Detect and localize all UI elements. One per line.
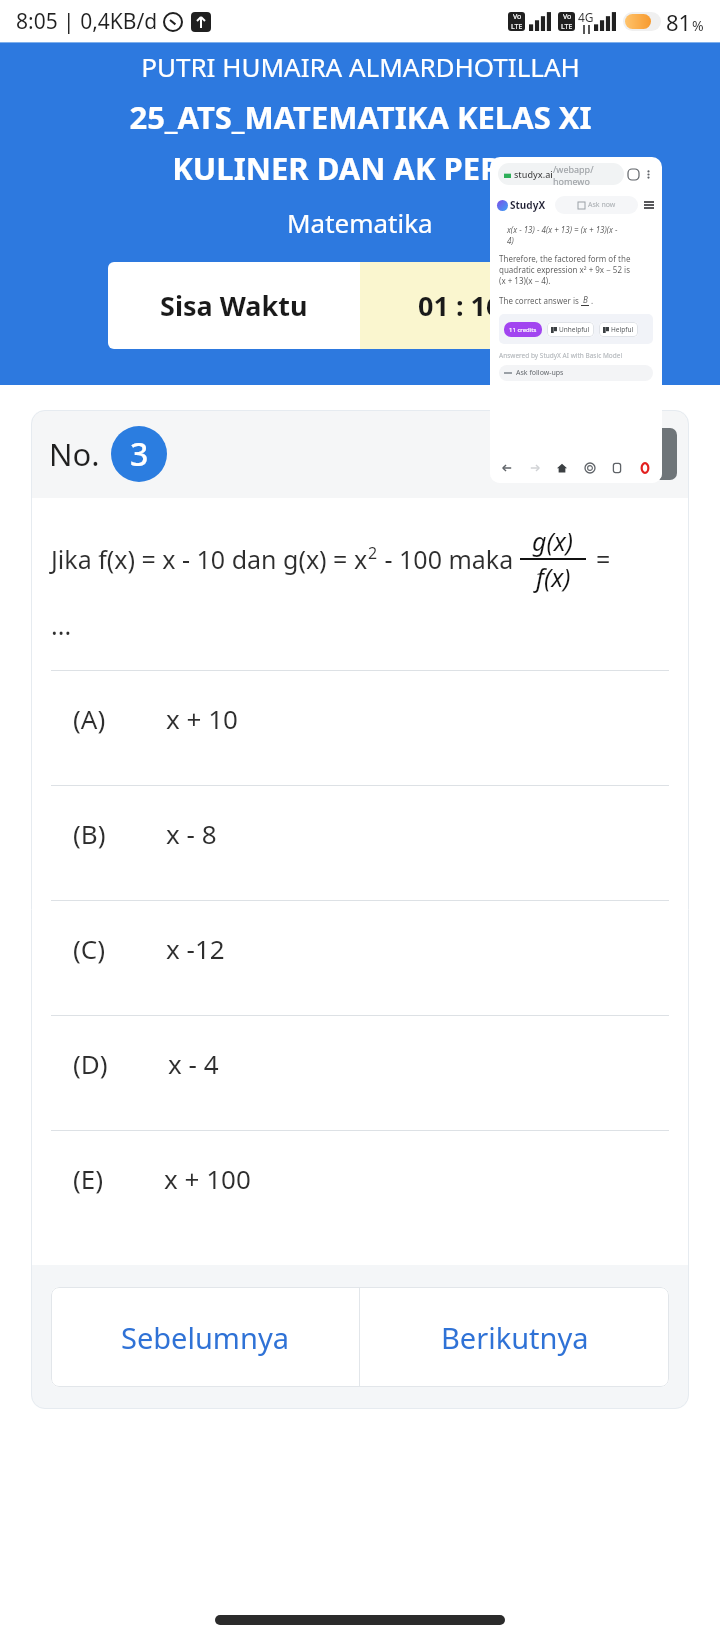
staticText: Answered by StudyX AI with Basic Model xyxy=(499,351,623,360)
staticText: x - 4 xyxy=(168,1046,219,1081)
button[interactable]: (A) xyxy=(31,671,689,785)
button[interactable]: Helpful xyxy=(599,322,638,337)
staticText: - 100 maka xyxy=(378,542,520,576)
staticText: 4G xyxy=(578,9,594,25)
staticText: Matematika xyxy=(287,205,433,240)
button[interactable]: Home xyxy=(553,459,571,477)
staticText: Sisa Waktu xyxy=(160,287,308,324)
staticText: (B) xyxy=(73,816,106,851)
staticText: 81 xyxy=(666,7,692,37)
staticText: x + 100 xyxy=(164,1161,251,1196)
staticText: (A) xyxy=(73,701,106,736)
staticText: = xyxy=(596,542,611,576)
staticText: No. xyxy=(49,433,100,475)
button[interactable]: Sisa Waktu xyxy=(108,262,612,349)
staticText: Helpful xyxy=(611,325,634,334)
button[interactable]: Medium text size xyxy=(572,433,614,475)
staticText: LTE xyxy=(561,22,573,31)
staticText: 4) xyxy=(507,235,514,246)
staticText: Berikutnya xyxy=(441,1318,589,1357)
button[interactable]: (D) xyxy=(31,1016,689,1130)
button[interactable]: Opera menu xyxy=(636,459,654,477)
staticText: (x + 13)(x − 4). xyxy=(499,275,551,286)
staticText: Sebelumnya xyxy=(121,1318,289,1357)
staticText: Therefore, the factored form of the xyxy=(499,253,631,264)
button[interactable]: (E) xyxy=(31,1131,689,1245)
staticText: x -12 xyxy=(166,931,225,966)
staticText: . xyxy=(589,295,594,306)
button[interactable]: Small text size xyxy=(529,438,561,470)
staticText: f(x) xyxy=(536,560,571,594)
button[interactable]: Tabs xyxy=(581,459,599,477)
staticText: 2 xyxy=(368,542,378,564)
button[interactable]: Large text size xyxy=(625,428,677,480)
staticText: (E) xyxy=(73,1161,104,1196)
staticText: PUTRI HUMAIRA ALMARDHOTILLAH xyxy=(141,49,580,84)
button[interactable]: Saved xyxy=(608,459,626,477)
button[interactable]: Berikutnya xyxy=(360,1287,669,1387)
staticText: LTE xyxy=(511,22,523,31)
staticText: (D) xyxy=(73,1046,108,1081)
staticText: 3 xyxy=(130,432,149,476)
staticText: 8:05 | 0,4KB/d xyxy=(16,7,158,36)
staticText: Unhelpful xyxy=(559,325,590,334)
staticText: ... xyxy=(51,608,72,642)
staticText: The correct answer is xyxy=(499,295,581,306)
staticText: 01 : 16 : 03 xyxy=(418,287,554,324)
button[interactable]: (B) xyxy=(31,786,689,900)
staticText: Vo xyxy=(513,12,522,22)
staticText: KULINER DAN AK PERHO xyxy=(172,147,549,189)
staticText: Jika f(x) = x - 10 dan g(x) = x xyxy=(51,542,368,576)
staticText: x - 8 xyxy=(166,816,217,851)
staticText: Ask follow-ups xyxy=(516,368,564,378)
staticText: A xyxy=(585,438,601,471)
staticText: StudyX xyxy=(510,198,546,212)
button[interactable]: (C) xyxy=(31,901,689,1015)
staticText: x + 10 xyxy=(166,701,238,736)
staticText: B xyxy=(583,294,588,305)
staticText: x(x − 13) − 4(x + 13) = (x + 13)(x − xyxy=(507,224,618,235)
button[interactable]: Unhelpful xyxy=(547,322,594,337)
staticText: g(x) xyxy=(532,524,574,558)
staticText: % xyxy=(692,16,704,35)
staticText: (C) xyxy=(73,931,106,966)
button[interactable]: Browser window xyxy=(490,157,662,483)
staticText: quadratic expression x² + 9x − 52 is xyxy=(499,264,630,275)
button[interactable]: Back xyxy=(498,459,516,477)
staticText: A xyxy=(641,434,661,475)
button[interactable]: Forward xyxy=(526,459,544,477)
staticText: /webapp/homewo xyxy=(553,163,618,185)
staticText: Vo xyxy=(563,12,572,22)
button[interactable]: Sebelumnya xyxy=(51,1287,359,1387)
staticText: Ask now xyxy=(588,200,616,210)
staticText: 11 credits xyxy=(509,326,537,334)
staticText: 25_ATS_MATEMATIKA KELAS XI xyxy=(129,96,592,138)
staticText: studyx.ai xyxy=(514,168,553,180)
